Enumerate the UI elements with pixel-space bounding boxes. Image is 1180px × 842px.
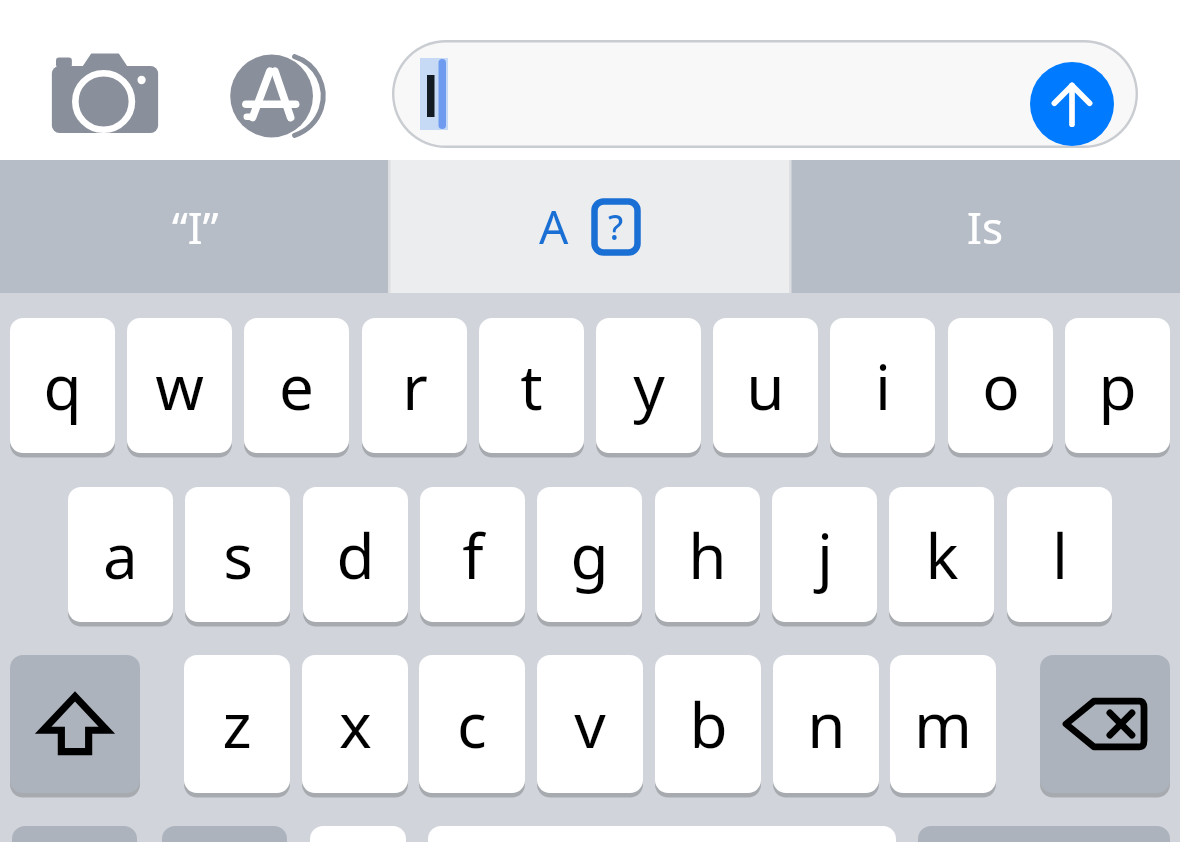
staticText: A — [539, 195, 569, 258]
staticText: v — [574, 682, 606, 766]
button[interactable]: r — [362, 318, 467, 453]
staticText: w — [155, 344, 204, 428]
button[interactable]: App Store — [214, 40, 334, 152]
staticText: f — [462, 513, 484, 597]
staticText: h — [688, 513, 727, 597]
button[interactable]: Space — [428, 826, 896, 842]
staticText: a — [103, 513, 138, 597]
button[interactable]: v — [537, 655, 643, 793]
staticText: d — [336, 513, 375, 597]
button[interactable]: “I” — [0, 160, 390, 293]
button[interactable]: q — [10, 318, 115, 453]
button[interactable]: m — [890, 655, 996, 793]
button[interactable]: a — [68, 487, 173, 622]
staticText: l — [1052, 513, 1068, 597]
button[interactable]: o — [948, 318, 1053, 453]
staticText: j — [817, 513, 833, 597]
button[interactable]: e — [244, 318, 349, 453]
button[interactable]: n — [773, 655, 879, 793]
button[interactable]: z — [184, 655, 290, 793]
button[interactable]: Return — [918, 826, 1170, 842]
button[interactable]: Dictation — [310, 826, 406, 842]
staticText: n — [807, 682, 846, 766]
button[interactable]: i — [830, 318, 935, 453]
button[interactable]: A — [390, 160, 790, 293]
button[interactable]: d — [303, 487, 408, 622]
button[interactable]: c — [419, 655, 525, 793]
staticText: Is — [967, 197, 1003, 257]
button[interactable]: j — [772, 487, 877, 622]
button[interactable]: g — [537, 487, 642, 622]
button[interactable]: u — [713, 318, 818, 453]
button[interactable]: k — [889, 487, 994, 622]
button[interactable]: Camera — [36, 46, 174, 146]
staticText: k — [925, 513, 959, 597]
staticText: o — [982, 344, 1020, 428]
staticText: q — [43, 344, 82, 428]
staticText: p — [1098, 344, 1137, 428]
staticText: s — [223, 513, 253, 597]
staticText: m — [914, 682, 972, 766]
staticText: “I” — [172, 197, 219, 257]
button[interactable]: Numbers — [12, 826, 137, 842]
button[interactable]: Emoji — [162, 826, 287, 842]
button[interactable]: h — [655, 487, 760, 622]
button[interactable]: x — [302, 655, 408, 793]
button[interactable]: l — [1007, 487, 1112, 622]
staticText: r — [402, 344, 428, 428]
button[interactable]: Shift — [10, 655, 140, 793]
staticText: i — [875, 344, 891, 428]
button[interactable]: s — [185, 487, 290, 622]
staticText: ? — [608, 204, 624, 250]
button[interactable]: y — [596, 318, 701, 453]
button[interactable]: p — [1065, 318, 1170, 453]
staticText: b — [689, 682, 728, 766]
staticText: x — [339, 682, 372, 766]
button[interactable]: w — [127, 318, 232, 453]
button[interactable]: t — [479, 318, 584, 453]
button[interactable]: Send — [1030, 62, 1114, 146]
staticText: e — [279, 344, 314, 428]
button[interactable]: f — [420, 487, 525, 622]
button[interactable]: Backspace — [1040, 655, 1170, 793]
staticText: c — [457, 682, 487, 766]
button[interactable]: Is — [790, 160, 1180, 293]
staticText: g — [570, 513, 609, 597]
staticText: z — [222, 682, 252, 766]
button[interactable] — [392, 40, 1138, 148]
staticText: y — [633, 344, 665, 428]
staticText: t — [520, 344, 543, 428]
staticText: u — [746, 344, 785, 428]
button[interactable]: b — [655, 655, 761, 793]
